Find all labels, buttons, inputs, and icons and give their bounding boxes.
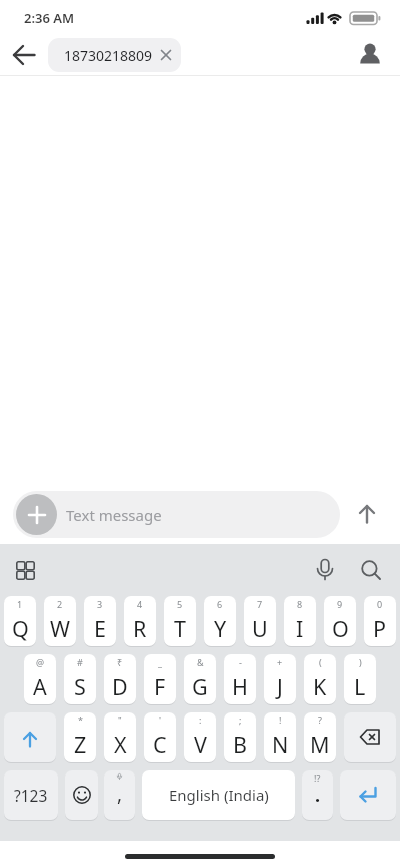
staticText: ) [359, 656, 362, 668]
button[interactable]: 1 [4, 596, 36, 646]
staticText: N [272, 730, 289, 759]
staticText: ! [279, 714, 282, 726]
staticText: O [332, 614, 349, 643]
staticText: ₹ [117, 656, 123, 668]
staticText: E [94, 614, 106, 643]
staticText: 5 [177, 598, 183, 610]
button[interactable]: English (India) [142, 770, 295, 820]
staticText: 6 [217, 598, 223, 610]
button[interactable] [65, 770, 98, 820]
button[interactable]: : [184, 712, 216, 762]
staticText: B [233, 730, 247, 759]
button[interactable] [308, 553, 342, 587]
staticText: English (India) [169, 785, 269, 805]
staticText: ; [239, 714, 242, 726]
staticText: , [117, 781, 123, 807]
staticText: V [194, 730, 207, 759]
button[interactable] [352, 37, 388, 73]
button[interactable] [8, 553, 42, 587]
staticText: - [239, 656, 242, 668]
staticText: P [373, 614, 387, 643]
button[interactable] [344, 712, 396, 762]
button[interactable] [4, 712, 56, 762]
staticText: & [197, 656, 204, 668]
button[interactable]: 4 [124, 596, 156, 646]
button[interactable]: + [264, 654, 296, 704]
button[interactable]: " [104, 712, 136, 762]
staticText: I [296, 614, 304, 643]
staticText: T [174, 614, 186, 643]
button[interactable]: , [104, 770, 135, 820]
button[interactable]: ; [224, 712, 256, 762]
button[interactable] [348, 495, 386, 533]
button[interactable]: 18730218809 [48, 38, 181, 72]
staticText: 1 [17, 598, 23, 610]
staticText: 8 [297, 598, 303, 610]
button[interactable]: 0 [364, 596, 396, 646]
staticText: Q [12, 614, 29, 643]
staticText: A [33, 672, 47, 701]
button[interactable]: # [64, 654, 96, 704]
staticText: D [112, 672, 128, 701]
button[interactable]: - [224, 654, 256, 704]
staticText: G [192, 672, 208, 701]
button[interactable] [340, 770, 396, 820]
button[interactable]: !? [302, 770, 333, 820]
staticText: !? [314, 772, 321, 784]
staticText: ( [319, 656, 322, 668]
button[interactable]: 5 [164, 596, 196, 646]
staticText: L [354, 672, 366, 701]
staticText: : [199, 714, 202, 726]
staticText: 3 [97, 598, 103, 610]
staticText: 7 [257, 598, 263, 610]
button[interactable]: & [184, 654, 216, 704]
staticText: W [50, 614, 70, 643]
staticText: + [277, 656, 283, 668]
button[interactable] [16, 494, 57, 535]
button[interactable]: ) [344, 654, 376, 704]
staticText: S [74, 672, 86, 701]
button[interactable]: * [64, 712, 96, 762]
staticText: M [310, 730, 330, 759]
button[interactable]: 9 [324, 596, 356, 646]
staticText: # [77, 656, 83, 668]
button[interactable]: ₹ [104, 654, 136, 704]
button[interactable]: ? [304, 712, 336, 762]
button[interactable]: 8 [284, 596, 316, 646]
staticText: U [252, 614, 268, 643]
staticText: F [154, 672, 166, 701]
staticText: 4 [137, 598, 143, 610]
staticText: X [114, 730, 127, 759]
staticText: Y [214, 614, 227, 643]
staticText: 18730218809 [64, 46, 153, 65]
button[interactable]: _ [144, 654, 176, 704]
button[interactable] [6, 37, 42, 73]
staticText: ?123 [14, 785, 48, 806]
button[interactable]: 7 [244, 596, 276, 646]
button[interactable]: Text message [13, 491, 340, 538]
button[interactable]: ( [304, 654, 336, 704]
staticText: " [118, 714, 122, 726]
button[interactable]: 3 [84, 596, 116, 646]
staticText: _ [158, 656, 162, 668]
button[interactable]: ?123 [4, 770, 58, 820]
button[interactable]: ! [264, 712, 296, 762]
button[interactable]: 2 [44, 596, 76, 646]
button[interactable] [354, 553, 388, 587]
staticText: Text message [66, 505, 162, 525]
staticText: ? [318, 714, 322, 726]
staticText: J [277, 672, 283, 701]
staticText: R [133, 614, 147, 643]
staticText: 9 [337, 598, 343, 610]
staticText: * [78, 714, 83, 726]
button[interactable]: ' [144, 712, 176, 762]
button[interactable]: @ [24, 654, 56, 704]
staticText: ' [159, 714, 162, 726]
staticText: 2 [57, 598, 63, 610]
staticText: . [315, 783, 321, 808]
button[interactable]: 6 [204, 596, 236, 646]
staticText: K [313, 672, 327, 701]
staticText: H [232, 672, 248, 701]
staticText: @ [36, 656, 45, 668]
staticText: 0 [377, 598, 383, 610]
